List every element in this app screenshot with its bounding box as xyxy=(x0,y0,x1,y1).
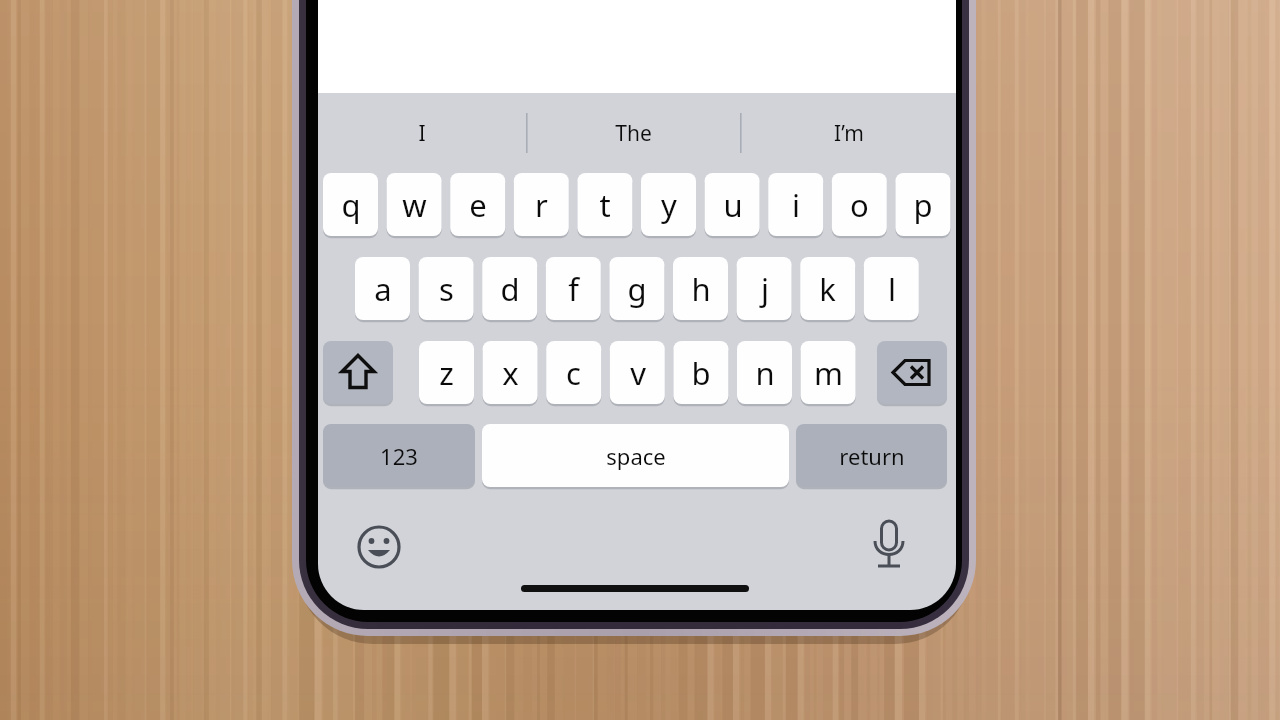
button[interactable]: m xyxy=(801,341,856,404)
staticText: t xyxy=(599,184,611,226)
button[interactable]: u xyxy=(705,173,760,236)
staticText: m xyxy=(814,352,843,394)
button[interactable]: d xyxy=(482,257,537,320)
button[interactable]: return xyxy=(796,424,947,487)
staticText: h xyxy=(691,268,711,310)
button[interactable]: Dictation xyxy=(865,521,913,569)
staticText: l xyxy=(888,268,896,310)
button[interactable]: a xyxy=(355,257,410,320)
button[interactable]: 123 xyxy=(323,424,475,487)
button[interactable]: s xyxy=(419,257,474,320)
button[interactable]: t xyxy=(577,173,632,236)
button[interactable]: k xyxy=(800,257,855,320)
staticText: s xyxy=(439,268,454,310)
button[interactable]: q xyxy=(323,173,378,236)
staticText: f xyxy=(568,268,579,310)
staticText: w xyxy=(402,184,427,226)
button[interactable]: w xyxy=(387,173,442,236)
staticText: q xyxy=(341,184,361,226)
staticText: n xyxy=(755,352,775,394)
button[interactable]: Emoji keyboard xyxy=(355,523,403,571)
staticText: i xyxy=(792,184,800,226)
staticText: k xyxy=(819,268,836,310)
staticText: z xyxy=(439,352,454,394)
staticText: The xyxy=(615,119,652,148)
staticText: r xyxy=(535,184,548,226)
button[interactable]: x xyxy=(483,341,538,404)
button[interactable]: o xyxy=(832,173,887,236)
button[interactable]: space xyxy=(482,424,789,487)
staticText: space xyxy=(606,441,666,471)
staticText: return xyxy=(839,441,905,471)
button[interactable]: n xyxy=(737,341,792,404)
button[interactable]: f xyxy=(546,257,601,320)
button[interactable]: z xyxy=(419,341,474,404)
staticText: o xyxy=(850,184,869,226)
staticText: 123 xyxy=(380,441,418,471)
staticText: x xyxy=(502,352,519,394)
staticText: d xyxy=(500,268,520,310)
button[interactable]: c xyxy=(546,341,601,404)
button[interactable]: p xyxy=(895,173,950,236)
staticText: I xyxy=(418,119,426,148)
button[interactable]: i xyxy=(768,173,823,236)
button[interactable]: Backspace xyxy=(877,341,947,404)
button[interactable]: The xyxy=(527,104,740,162)
button[interactable]: I xyxy=(318,104,526,162)
button[interactable]: I’m xyxy=(741,104,956,162)
staticText: b xyxy=(691,352,711,394)
button[interactable]: j xyxy=(737,257,792,320)
staticText: e xyxy=(469,184,487,226)
staticText: g xyxy=(627,268,647,310)
button[interactable]: Shift xyxy=(323,341,393,404)
staticText: a xyxy=(374,268,392,310)
staticText: u xyxy=(723,184,743,226)
button[interactable]: b xyxy=(673,341,728,404)
button[interactable]: r xyxy=(514,173,569,236)
staticText: I’m xyxy=(834,119,864,148)
staticText: p xyxy=(913,184,933,226)
button[interactable]: g xyxy=(609,257,664,320)
staticText: c xyxy=(566,352,581,394)
button[interactable]: v xyxy=(610,341,665,404)
staticText: y xyxy=(661,184,677,226)
button[interactable]: y xyxy=(641,173,696,236)
staticText: v xyxy=(630,352,646,394)
button[interactable]: e xyxy=(450,173,505,236)
button[interactable]: l xyxy=(864,257,919,320)
staticText: j xyxy=(761,268,769,310)
button[interactable]: h xyxy=(673,257,728,320)
